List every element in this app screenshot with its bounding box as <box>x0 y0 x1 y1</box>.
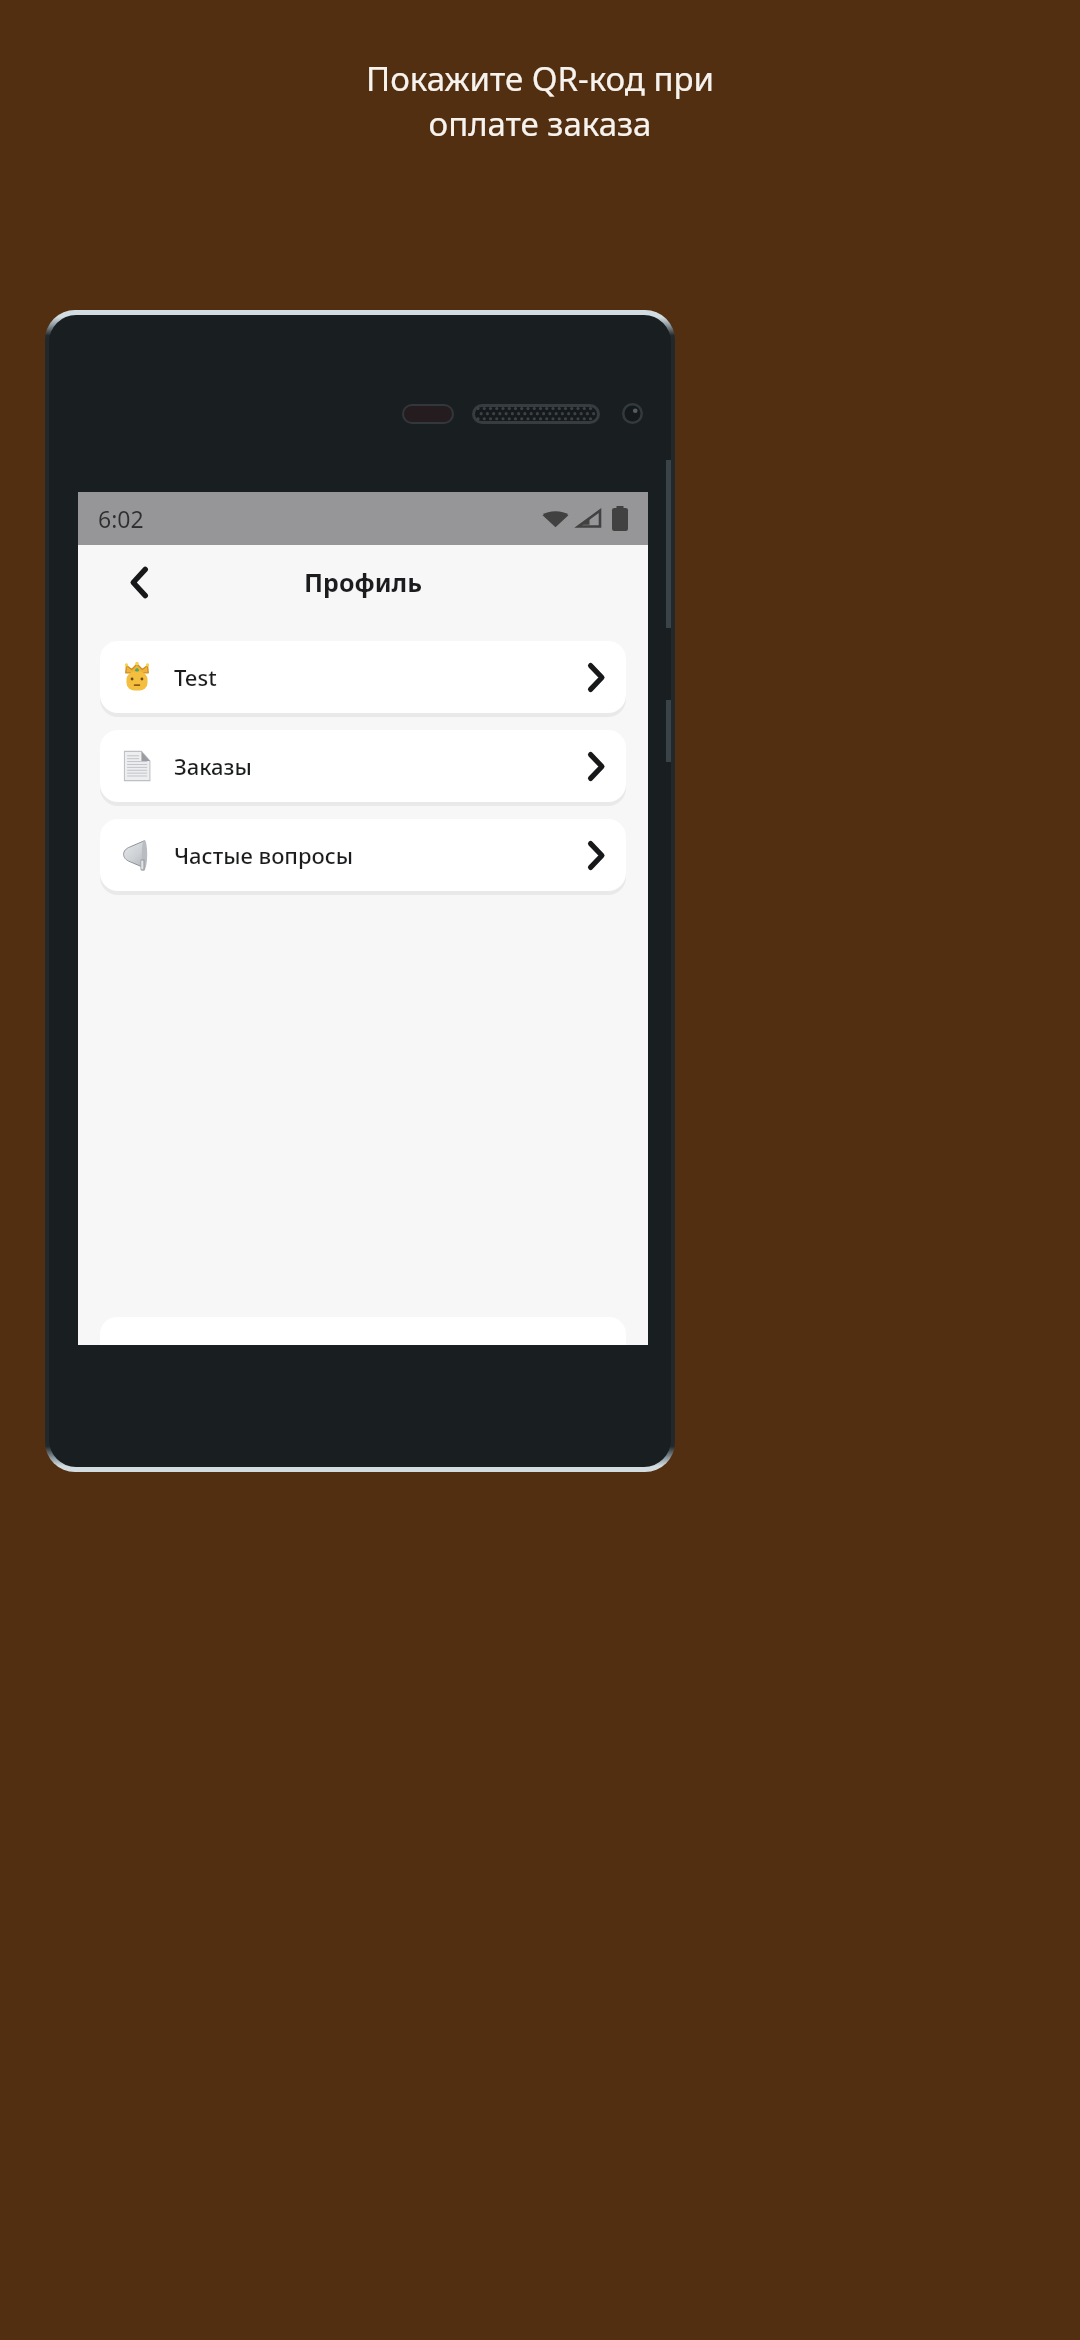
button[interactable]: Back <box>116 559 162 605</box>
button[interactable]: Заказы <box>100 730 626 802</box>
staticText: оплате заказа <box>90 101 990 146</box>
staticText: Покажите QR-код при <box>90 56 990 101</box>
staticText: Test <box>174 662 588 692</box>
staticText: Заказы <box>174 751 588 781</box>
staticText: 6:02 <box>98 503 144 534</box>
button[interactable]: Частые вопросы <box>100 819 626 891</box>
staticText: Частые вопросы <box>174 840 588 870</box>
button[interactable]: Test <box>100 641 626 713</box>
staticText: Профиль <box>304 565 422 599</box>
